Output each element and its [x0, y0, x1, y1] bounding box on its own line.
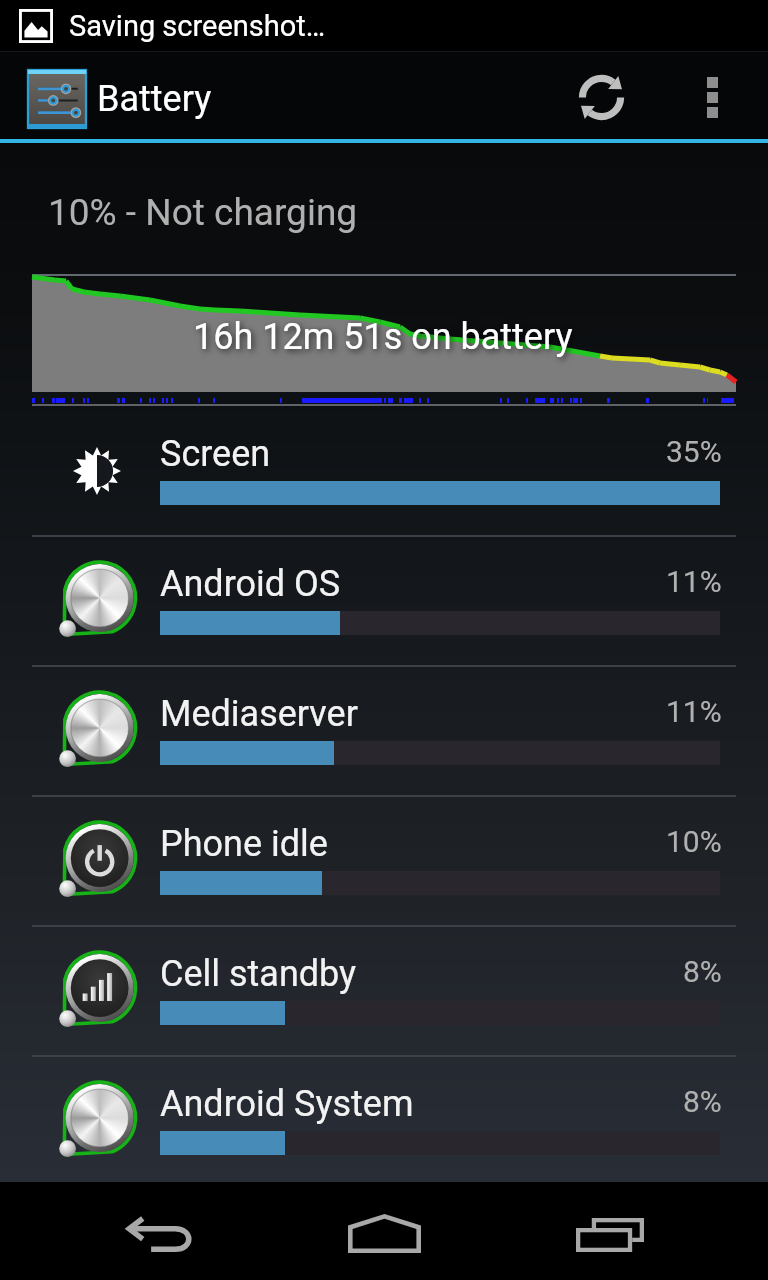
staticText: Saving screenshot… — [69, 9, 326, 43]
staticText: 11% — [666, 694, 722, 729]
staticText: 8% — [683, 1084, 722, 1119]
button[interactable]: Screen — [0, 407, 768, 535]
staticText: 10% - Not charging — [48, 191, 358, 234]
staticText: Mediaserver — [160, 693, 358, 735]
button[interactable]: Recent apps — [510, 1182, 710, 1277]
button[interactable]: Home — [284, 1182, 484, 1277]
button[interactable]: Refresh — [518, 54, 684, 141]
button[interactable]: Phone idle — [0, 797, 768, 925]
button[interactable]: Cell standby — [0, 927, 768, 1055]
staticText: 10% — [666, 824, 722, 859]
staticText: Android OS — [160, 563, 341, 605]
staticText: 11% — [666, 564, 722, 599]
button[interactable]: Android OS — [0, 537, 768, 665]
staticText: Phone idle — [160, 823, 328, 865]
staticText: 16h 12m 51s on battery — [193, 316, 573, 358]
button[interactable]: Android System — [0, 1057, 768, 1182]
button[interactable]: Mediaserver — [0, 667, 768, 795]
staticText: 35% — [666, 434, 722, 469]
staticText: 8% — [683, 954, 722, 989]
staticText: Cell standby — [160, 953, 357, 995]
staticText: Battery — [97, 78, 212, 120]
staticText: Screen — [160, 433, 271, 475]
staticText: Android System — [160, 1083, 414, 1125]
button[interactable]: More options — [684, 54, 741, 141]
button[interactable]: Back — [60, 1182, 260, 1277]
